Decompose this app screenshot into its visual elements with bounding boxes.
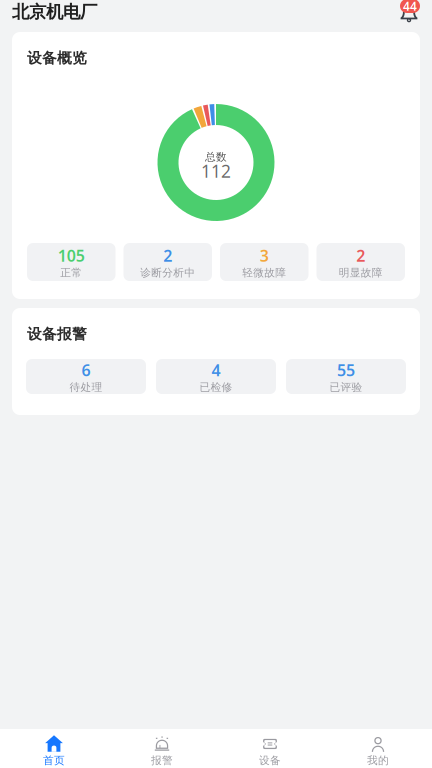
staticText: 明显故障 (339, 266, 383, 279)
button[interactable]: 6 (26, 359, 146, 394)
button[interactable]: 我的 (324, 729, 432, 768)
button[interactable]: 2 (316, 243, 405, 281)
button[interactable]: 首页 (0, 729, 108, 768)
staticText: 3 (260, 245, 269, 266)
staticText: 设备 (259, 754, 281, 767)
staticText: 44 (403, 0, 417, 14)
staticText: 首页 (43, 754, 65, 767)
button[interactable]: 报警 (108, 729, 216, 768)
staticText: 报警 (151, 754, 173, 767)
button[interactable]: 105 (27, 243, 115, 281)
staticText: 55 (337, 359, 355, 381)
staticText: 轻微故障 (242, 266, 286, 279)
staticText: 已检修 (199, 381, 232, 394)
staticText: 设备概览 (27, 49, 87, 67)
staticText: 总数 (205, 150, 227, 164)
button[interactable]: 3 (220, 243, 308, 281)
staticText: 2 (163, 245, 172, 266)
staticText: 已评验 (329, 381, 362, 394)
button[interactable]: 2 (123, 243, 212, 281)
staticText: 4 (211, 359, 220, 381)
staticText: 诊断分析中 (140, 266, 195, 279)
staticText: 105 (58, 245, 85, 266)
staticText: 6 (81, 359, 90, 381)
button[interactable]: 通知 (398, 2, 420, 22)
button[interactable]: 4 (156, 359, 276, 394)
staticText: 2 (356, 245, 365, 266)
staticText: 设备报警 (27, 325, 87, 343)
button[interactable]: 设备 (216, 729, 324, 768)
staticText: 待处理 (69, 381, 102, 394)
button[interactable]: 55 (286, 359, 406, 394)
staticText: 北京机电厂 (12, 1, 97, 23)
staticText: 112 (201, 160, 231, 183)
staticText: 正常 (60, 266, 82, 279)
staticText: 我的 (367, 754, 389, 767)
